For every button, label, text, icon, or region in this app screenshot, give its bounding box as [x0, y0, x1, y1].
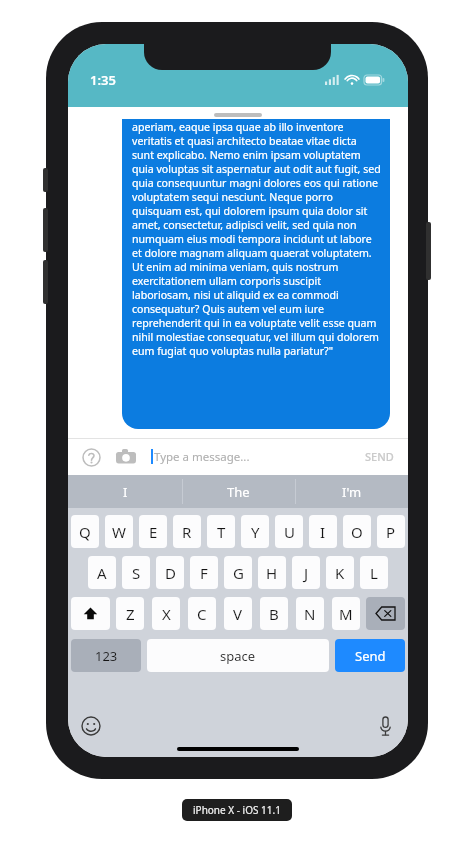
button[interactable]: B	[260, 597, 288, 630]
button[interactable]: Y	[241, 515, 269, 548]
button[interactable]: G	[224, 556, 252, 589]
button[interactable]: Q	[71, 515, 99, 548]
staticText: F	[200, 563, 208, 583]
button[interactable]: J	[292, 556, 320, 589]
staticText: V	[233, 604, 243, 624]
button[interactable]: A	[88, 556, 116, 589]
staticText: iPhone X - iOS 11.1	[193, 803, 281, 817]
staticText: P	[386, 522, 396, 542]
button[interactable]: Send	[335, 639, 405, 672]
button[interactable]: 123	[71, 639, 141, 672]
staticText: W	[112, 522, 126, 542]
button[interactable]: E	[139, 515, 167, 548]
staticText: Q	[79, 522, 91, 542]
button[interactable]: D	[156, 556, 184, 589]
button[interactable]: C	[188, 597, 216, 630]
staticText: H	[266, 563, 278, 583]
button[interactable]: I	[68, 475, 182, 508]
button[interactable]: L	[360, 556, 388, 589]
staticText: O	[351, 522, 363, 542]
button[interactable]: iPhone X - iOS 11.1	[182, 799, 292, 821]
staticText: C	[197, 604, 207, 624]
staticText: space	[220, 647, 256, 665]
staticText: M	[339, 604, 353, 624]
staticText: 1:35	[90, 71, 116, 89]
button[interactable]: R	[173, 515, 201, 548]
staticText: A	[97, 563, 107, 583]
button[interactable]: Camera	[115, 446, 137, 468]
staticText: SEND	[365, 449, 394, 464]
staticText: Z	[126, 604, 135, 624]
button[interactable]: O	[343, 515, 371, 548]
button[interactable]: M	[332, 597, 360, 630]
button[interactable]: F	[190, 556, 218, 589]
button[interactable]: U	[275, 515, 303, 548]
staticText: aperiam, eaque ipsa quae ab illo invento…	[132, 120, 381, 358]
button[interactable]: S	[122, 556, 150, 589]
button[interactable]: Shift	[71, 597, 110, 630]
button[interactable]: T	[207, 515, 235, 548]
button[interactable]: I'm	[295, 475, 408, 508]
staticText: J	[304, 563, 309, 583]
button[interactable]: aperiam, eaque ipsa quae ab illo invento…	[122, 119, 390, 429]
button[interactable]: Help	[80, 446, 102, 468]
button[interactable]: Dictation	[373, 714, 397, 738]
staticText: E	[149, 522, 158, 542]
button[interactable]: V	[224, 597, 252, 630]
staticText: Y	[251, 522, 260, 542]
button[interactable]: The	[182, 475, 295, 508]
button[interactable]: Emoji	[79, 714, 103, 738]
button[interactable]: X	[152, 597, 180, 630]
button[interactable]: space	[147, 639, 329, 672]
staticText: N	[304, 604, 316, 624]
button[interactable]: N	[296, 597, 324, 630]
staticText: S	[132, 563, 141, 583]
button[interactable]: H	[258, 556, 286, 589]
staticText: G	[233, 563, 244, 583]
staticText: I	[320, 522, 326, 542]
button[interactable]: Backspace	[366, 597, 405, 630]
staticText: U	[284, 522, 295, 542]
staticText: K	[335, 563, 345, 583]
staticText: T	[217, 522, 226, 542]
button[interactable]: SEND	[363, 447, 396, 466]
staticText: I'm	[342, 483, 362, 501]
button[interactable]: K	[326, 556, 354, 589]
button[interactable]: I	[309, 515, 337, 548]
button[interactable]: Z	[116, 597, 144, 630]
staticText: L	[370, 563, 378, 583]
staticText: Send	[355, 647, 386, 665]
staticText: The	[227, 483, 250, 501]
staticText: I	[123, 483, 128, 501]
staticText: B	[269, 604, 279, 624]
button[interactable]: P	[377, 515, 405, 548]
staticText: D	[165, 563, 176, 583]
staticText: Type a message...	[154, 449, 250, 465]
button[interactable]: W	[105, 515, 133, 548]
staticText: R	[182, 522, 192, 542]
staticText: 123	[95, 647, 118, 665]
staticText: X	[162, 604, 171, 624]
